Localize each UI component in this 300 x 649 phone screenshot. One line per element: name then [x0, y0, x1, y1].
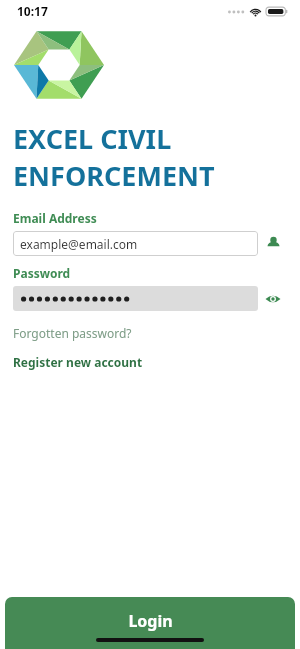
staticText: Forgotten password? — [13, 325, 132, 341]
staticText: Email Address — [13, 210, 97, 226]
staticText: 10:17 — [17, 3, 48, 19]
button[interactable]: Select account — [258, 231, 288, 256]
button[interactable]: Register new account — [13, 354, 143, 370]
staticText: example@email.com — [20, 236, 138, 252]
staticText: Login — [128, 610, 173, 632]
staticText: EXCEL CIVIL — [13, 120, 172, 157]
staticText: ENFORCEMENT — [13, 157, 215, 194]
staticText: Password — [13, 265, 71, 281]
button[interactable]: Login — [5, 597, 295, 649]
button[interactable]: Forgotten password? — [13, 325, 132, 341]
button[interactable]: Show password — [258, 286, 288, 311]
button[interactable] — [13, 286, 258, 311]
staticText: Register new account — [13, 354, 143, 370]
button[interactable]: example@email.com — [13, 231, 258, 256]
